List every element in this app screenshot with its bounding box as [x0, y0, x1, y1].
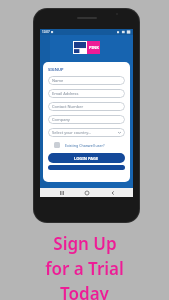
button[interactable]: Existing Chanwell user?: [48, 141, 125, 149]
staticText: Name: [52, 78, 64, 83]
staticText: for a Trial: [45, 257, 124, 280]
staticText: Contact Number: [52, 104, 84, 109]
button[interactable]: Home: [82, 188, 91, 197]
button[interactable]: Recents: [57, 188, 66, 197]
staticText: Sign Up: [53, 232, 117, 255]
button[interactable]: Name: [48, 76, 125, 85]
staticText: Company: [52, 117, 70, 122]
staticText: Today: [60, 282, 109, 300]
staticText: SIGNUP: [48, 67, 64, 72]
button[interactable]: Secondary action: [48, 165, 125, 170]
staticText: Select your country...: [52, 130, 92, 135]
staticText: Existing Chanwell user?: [65, 143, 105, 148]
button[interactable]: Company: [48, 115, 125, 124]
button[interactable]: LOGIN PAGE: [48, 153, 125, 163]
button[interactable]: Brand logo: [73, 41, 100, 54]
button[interactable]: Back: [108, 188, 117, 197]
staticText: PINK: [89, 45, 99, 50]
button[interactable]: Email Address: [48, 89, 125, 98]
button[interactable]: Select your country...: [48, 128, 125, 137]
button[interactable]: Contact Number: [48, 102, 125, 111]
staticText: Email Address: [52, 91, 79, 96]
staticText: 12:07: [42, 30, 50, 34]
staticText: LOGIN PAGE: [74, 156, 99, 161]
